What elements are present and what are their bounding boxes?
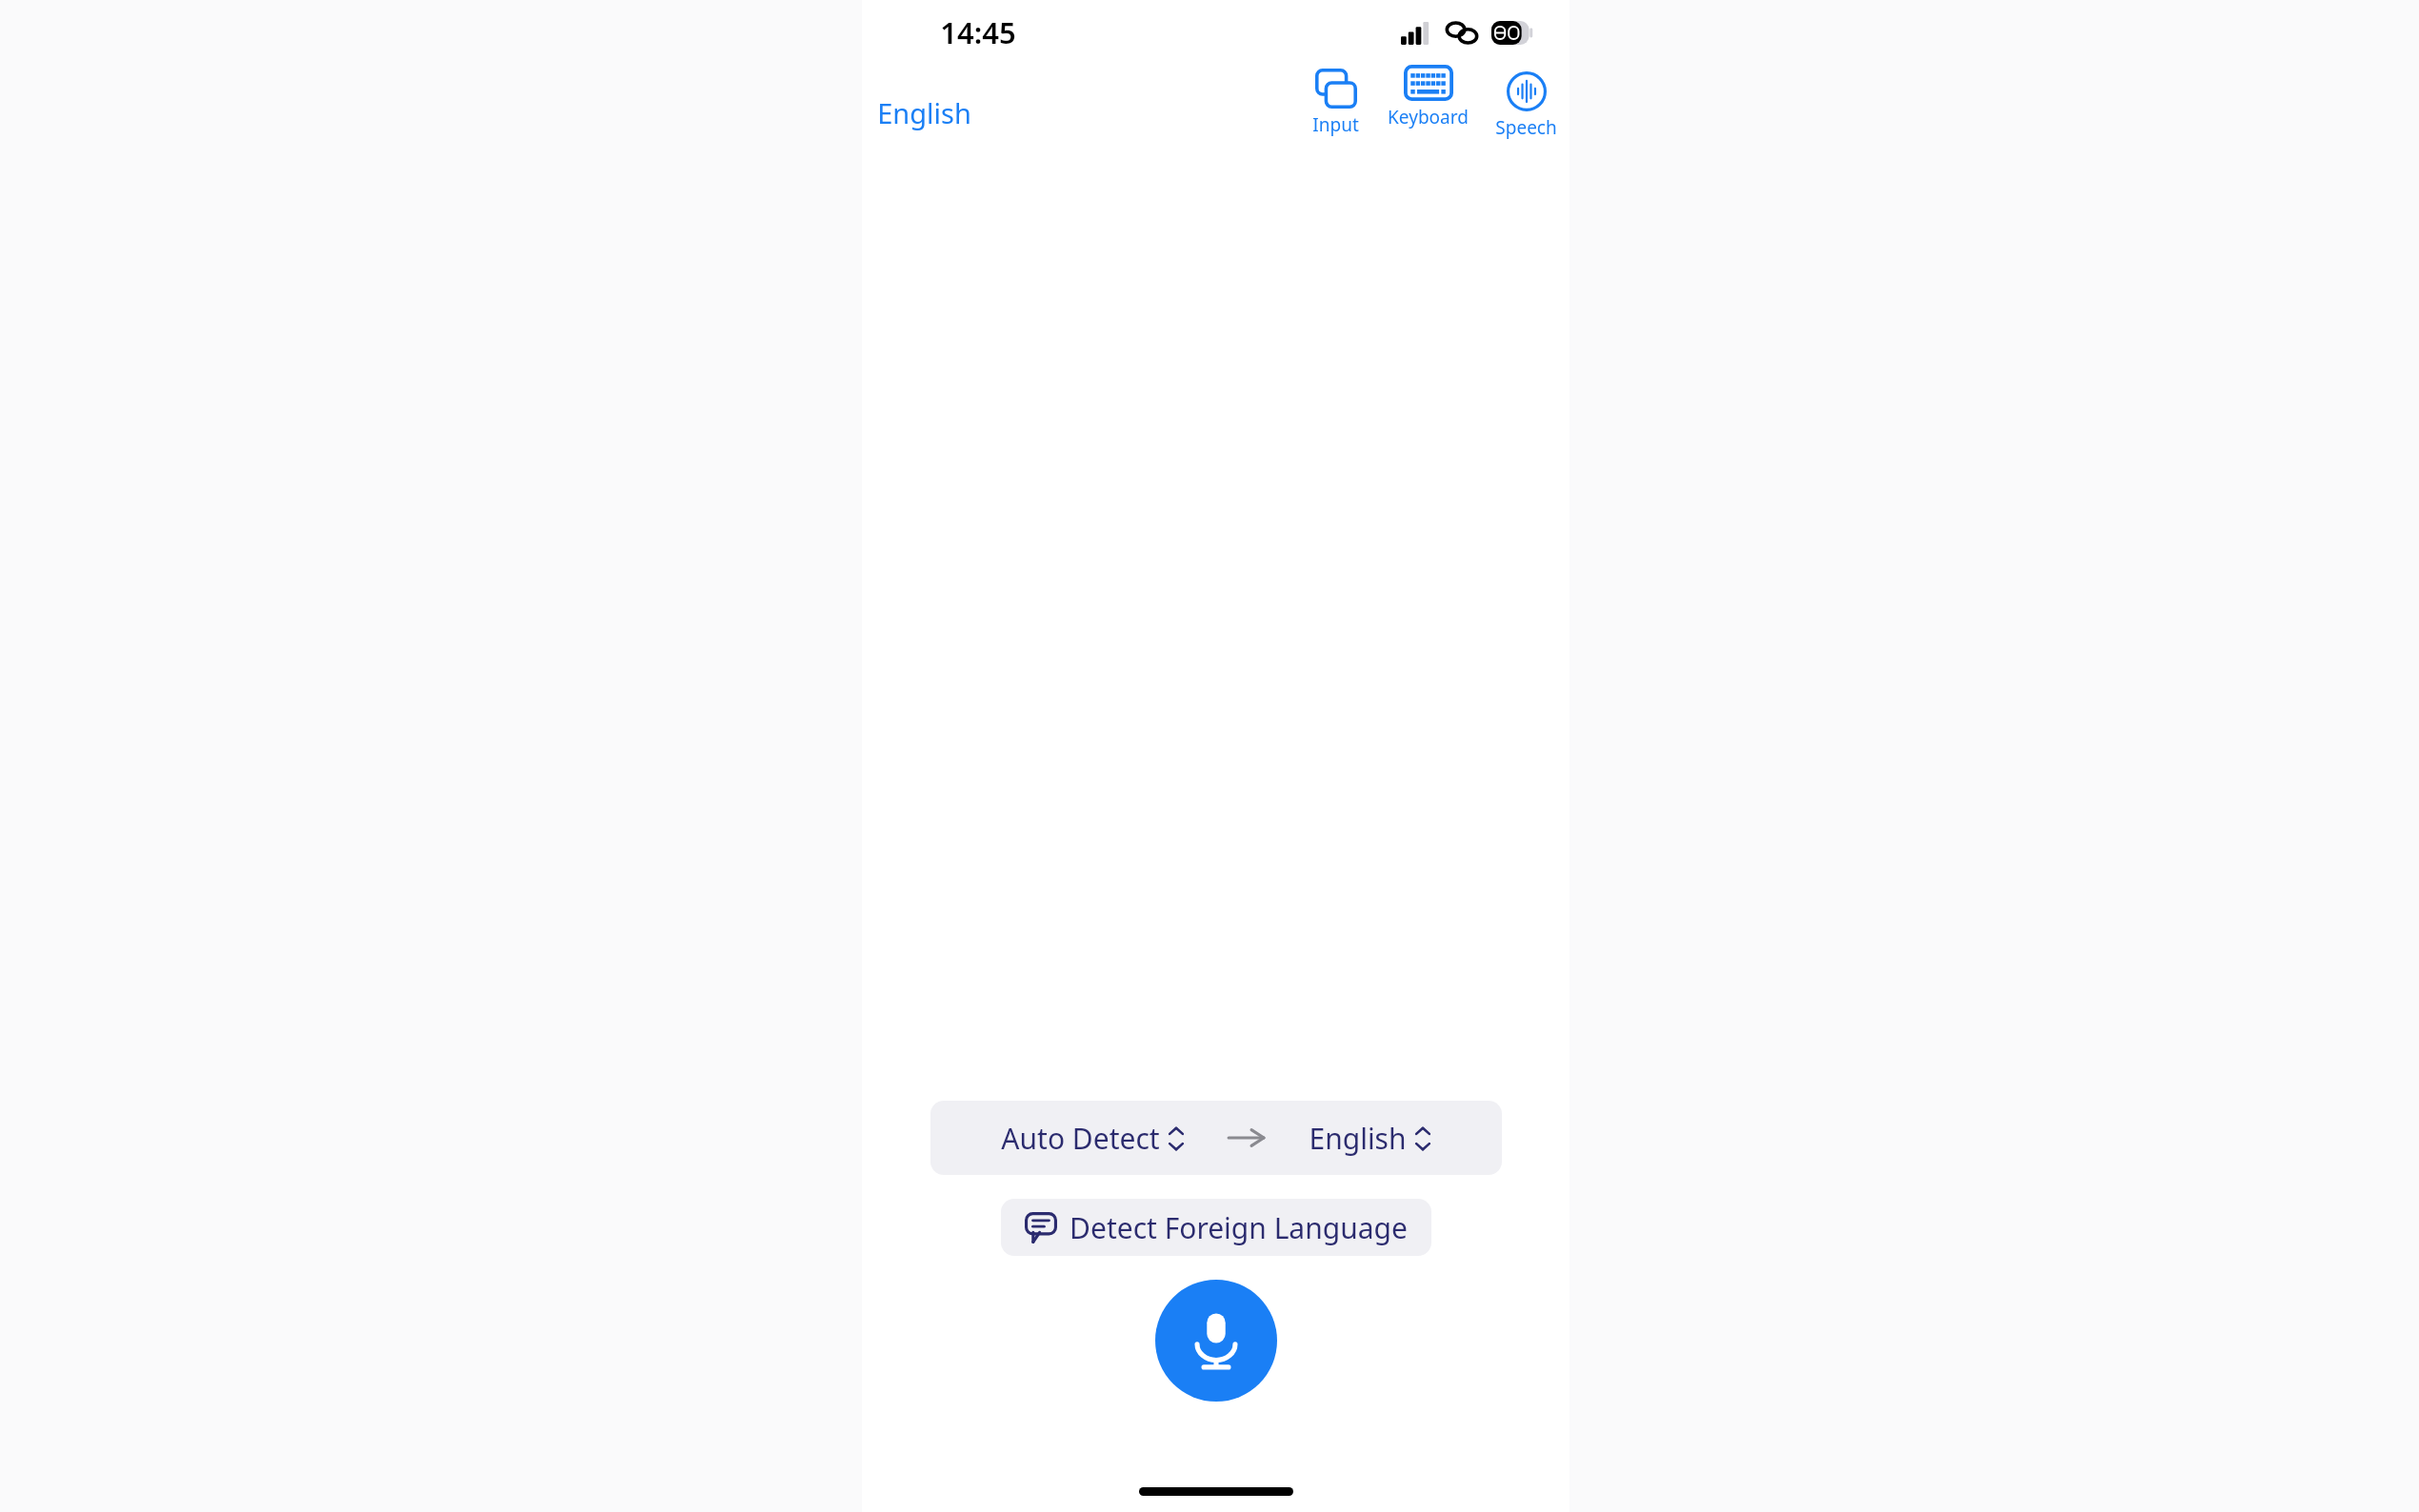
button[interactable]: English (1299, 1113, 1441, 1164)
staticText: Keyboard (1388, 105, 1469, 129)
staticText: Speech (1495, 115, 1557, 140)
staticText: Detect Foreign Language (1070, 1208, 1408, 1247)
button[interactable]: Auto Detect (991, 1113, 1194, 1164)
button[interactable]: Keyboard (1383, 63, 1473, 131)
button[interactable]: Start voice translation (1155, 1280, 1277, 1402)
staticText: Auto Detect (1001, 1119, 1160, 1158)
button[interactable]: Input (1308, 63, 1364, 139)
button[interactable]: Speech (1490, 63, 1562, 142)
staticText: English (1309, 1119, 1407, 1158)
staticText: Input (1312, 112, 1359, 137)
staticText: 14:45 (940, 12, 1016, 52)
button[interactable]: English (868, 87, 981, 139)
button[interactable]: Detect Foreign Language (1001, 1199, 1431, 1256)
staticText: English (877, 94, 971, 131)
